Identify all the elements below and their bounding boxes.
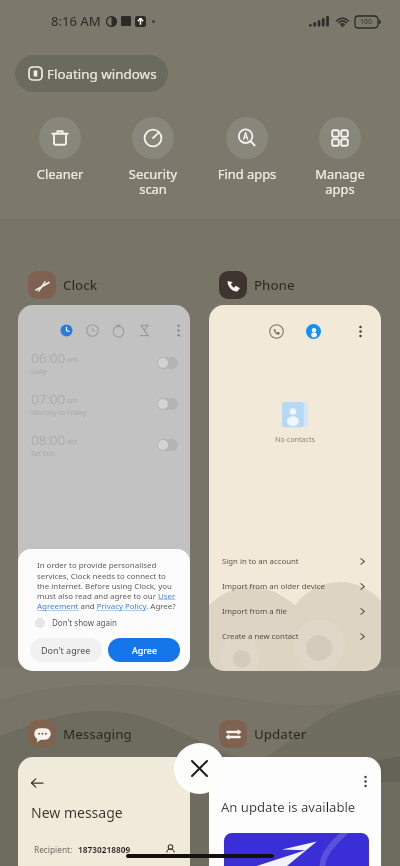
- staticText: Recipient:: [34, 844, 73, 855]
- staticText: am: [67, 437, 78, 447]
- button[interactable]: Don't agree: [30, 638, 102, 662]
- button[interactable]: Back: [31, 777, 43, 789]
- button[interactable]: Security scan: [110, 117, 196, 198]
- button[interactable]: Toggle alarm: [157, 439, 178, 451]
- staticText: An update is available: [221, 798, 372, 816]
- staticText: 08:00: [31, 431, 66, 449]
- button[interactable]: Find apps: [204, 117, 290, 183]
- staticText: 18730218809: [78, 844, 131, 855]
- button[interactable]: More options: [209, 757, 381, 866]
- button[interactable]: Alarm: [60, 324, 73, 337]
- staticText: Security scan: [110, 165, 196, 198]
- button[interactable]: Toggle alarm: [157, 357, 178, 369]
- staticText: Manage apps: [297, 165, 383, 198]
- staticText: New message: [31, 803, 123, 822]
- button[interactable]: Sign in to an account: [209, 549, 381, 574]
- button[interactable]: Import from an older device: [209, 574, 381, 599]
- staticText: Monday to Friday: [31, 408, 87, 417]
- button[interactable]: Close all recent apps: [174, 743, 225, 794]
- button[interactable]: Don't show again: [35, 617, 118, 628]
- button[interactable]: No contacts: [209, 305, 381, 671]
- button[interactable]: Stopwatch: [112, 324, 125, 337]
- staticText: Create a new contact: [222, 631, 299, 642]
- button[interactable]: Agree: [108, 638, 180, 662]
- button[interactable]: Toggle alarm: [157, 398, 178, 410]
- button[interactable]: Messaging: [28, 720, 132, 748]
- staticText: 8:16 AM: [51, 12, 101, 30]
- staticText: 07:00: [31, 390, 66, 408]
- staticText: Updater: [254, 725, 307, 743]
- staticText: am: [67, 355, 78, 365]
- staticText: Sat Sun: [31, 449, 55, 458]
- button[interactable]: Phone: [219, 271, 295, 299]
- button[interactable]: Back: [18, 757, 190, 866]
- button[interactable]: Clock: [28, 271, 98, 299]
- button[interactable]: Create a new contact: [209, 624, 381, 649]
- staticText: Import from an older device: [222, 581, 325, 592]
- button[interactable]: World clock: [86, 324, 99, 337]
- staticText: Import from a file: [222, 606, 287, 617]
- button[interactable]: Cleaner: [17, 117, 103, 183]
- staticText: Phone: [254, 276, 295, 294]
- staticText: Don't agree: [41, 644, 91, 656]
- button[interactable]: Floating windows: [15, 55, 168, 92]
- staticText: In order to provide personalised service…: [37, 560, 176, 612]
- button[interactable]: Manage apps: [297, 117, 383, 198]
- button[interactable]: More options: [359, 775, 372, 788]
- staticText: Sign in to an account: [222, 556, 299, 567]
- button[interactable]: Updater: [219, 720, 307, 748]
- staticText: No contacts: [275, 434, 316, 444]
- staticText: Cleaner: [17, 165, 103, 183]
- staticText: 06:00: [31, 349, 66, 367]
- staticText: am: [67, 396, 78, 406]
- staticText: Agree: [132, 644, 157, 656]
- staticText: 100: [360, 17, 373, 27]
- button[interactable]: Import from a file: [209, 599, 381, 624]
- button[interactable]: Timer: [138, 324, 151, 337]
- staticText: Don't show again: [52, 617, 118, 628]
- staticText: Messaging: [63, 725, 132, 743]
- staticText: Clock: [63, 276, 98, 294]
- button[interactable]: Alarm: [18, 305, 190, 671]
- button[interactable]: More options: [172, 324, 185, 337]
- staticText: Floating windows: [47, 65, 157, 83]
- staticText: Find apps: [204, 165, 290, 183]
- staticText: Daily: [31, 367, 47, 376]
